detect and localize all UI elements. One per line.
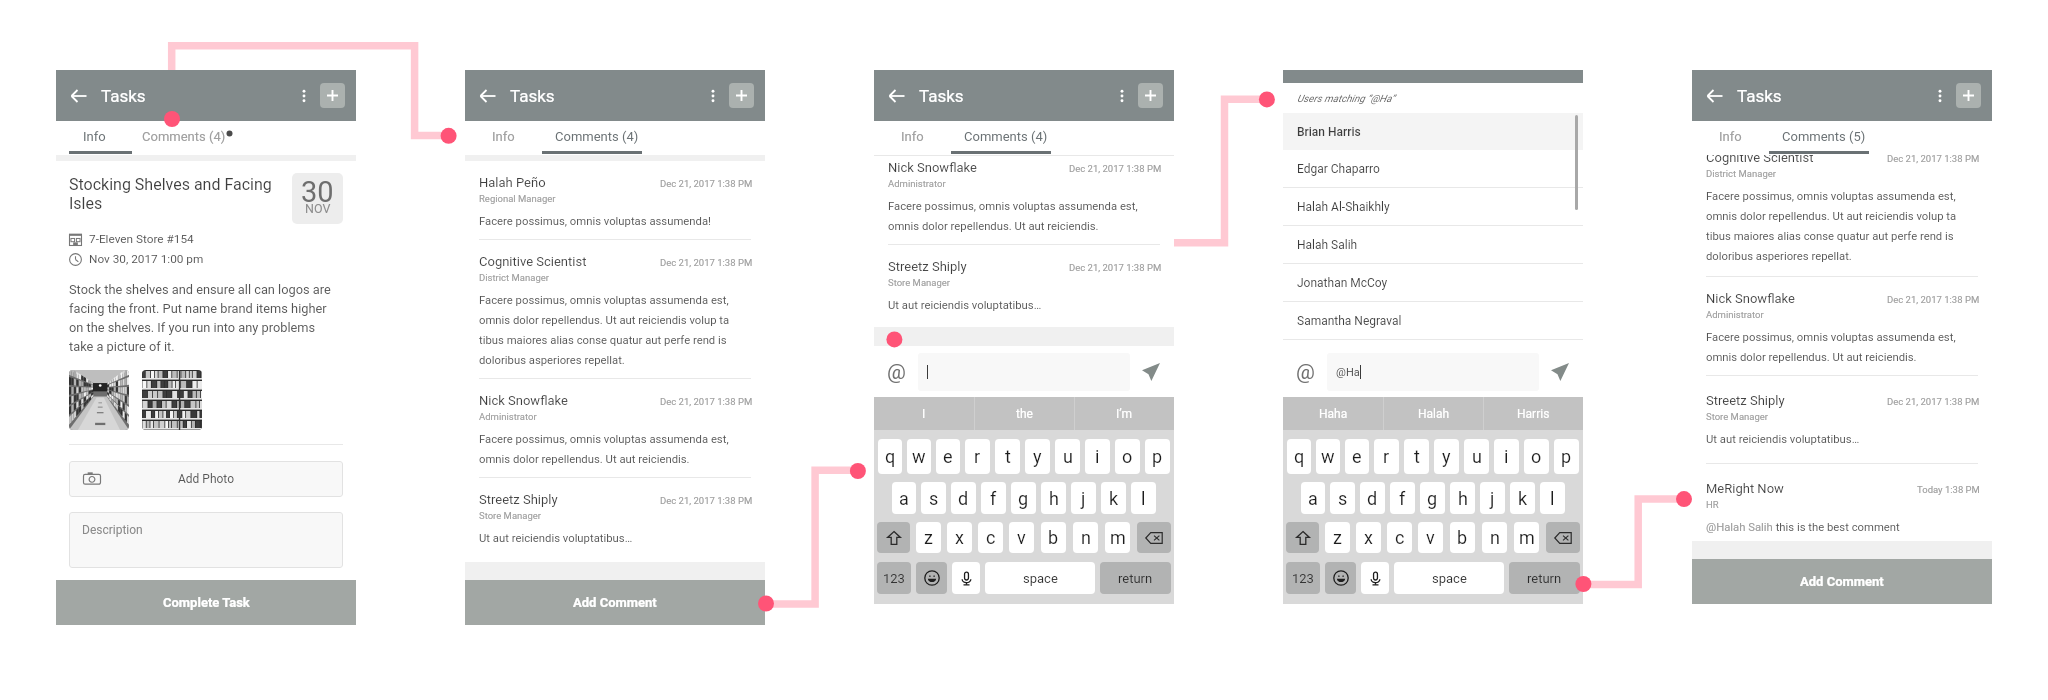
button[interactable]: Info	[465, 121, 542, 152]
button[interactable]: Comments (4)	[542, 121, 652, 152]
button[interactable]: Add Photo	[69, 461, 343, 497]
button[interactable]: i	[1494, 439, 1519, 474]
button[interactable]: a	[1301, 482, 1325, 514]
button[interactable]: Brian Harris	[1283, 113, 1583, 150]
button[interactable]: f	[981, 482, 1006, 514]
button[interactable]: u	[1464, 439, 1489, 474]
button[interactable]: d	[951, 482, 976, 514]
button[interactable]: @Ha	[1327, 353, 1539, 391]
button[interactable]: Back	[477, 85, 499, 107]
button[interactable]: l	[1131, 482, 1156, 514]
button[interactable]: w	[907, 439, 931, 474]
button[interactable]: p	[1145, 439, 1170, 474]
button[interactable]: o	[1524, 439, 1549, 474]
button[interactable]: Add Comment	[1692, 559, 1992, 604]
button[interactable]: Add task	[729, 83, 754, 108]
button[interactable]: b	[1450, 522, 1475, 553]
button[interactable]: d	[1360, 482, 1385, 514]
button[interactable]: m	[1105, 522, 1130, 553]
button[interactable]: g	[1011, 482, 1036, 514]
button[interactable]: m	[1514, 522, 1539, 553]
button[interactable]: Voice input	[1361, 562, 1389, 594]
button[interactable]: w	[1316, 439, 1340, 474]
button[interactable]: Emoji	[1325, 562, 1356, 594]
button[interactable]: v	[1009, 522, 1034, 553]
button[interactable]: Jonathan McCoy	[1283, 264, 1583, 301]
button[interactable]: q	[1287, 439, 1311, 474]
button[interactable]: Backspace	[1546, 522, 1580, 553]
button[interactable]: space	[985, 562, 1095, 594]
button[interactable]: h	[1450, 482, 1475, 514]
button[interactable]: Backspace	[1137, 522, 1171, 553]
button[interactable]: I’m	[1075, 397, 1174, 430]
button[interactable]: the	[975, 397, 1074, 430]
button[interactable]: x	[1356, 522, 1381, 553]
button[interactable]: Mention user	[883, 359, 909, 385]
button[interactable]: r	[1374, 439, 1399, 474]
button[interactable]: Halah Al-Shaikhly	[1283, 188, 1583, 225]
button[interactable]: Description	[69, 512, 343, 568]
button[interactable]: g	[1420, 482, 1445, 514]
button[interactable]: a	[892, 482, 916, 514]
button[interactable]: c	[1387, 522, 1412, 553]
button[interactable]: Back	[68, 85, 90, 107]
button[interactable]: z	[916, 522, 941, 553]
button[interactable]: t	[995, 439, 1020, 474]
button[interactable]: Harris	[1484, 397, 1583, 430]
button[interactable]: k	[1101, 482, 1126, 514]
button[interactable]: More options	[704, 87, 722, 105]
button[interactable]: Add Comment	[465, 580, 765, 625]
button[interactable]: i	[1085, 439, 1110, 474]
button[interactable]: Info	[1692, 121, 1769, 152]
button[interactable]: x	[947, 522, 972, 553]
button[interactable]: Samantha Negraval	[1283, 302, 1583, 339]
button[interactable]: Comments (5)	[1769, 121, 1879, 152]
button[interactable]: return	[1100, 562, 1171, 594]
button[interactable]: k	[1510, 482, 1535, 514]
button[interactable]: s	[921, 482, 946, 514]
button[interactable]: Halah Salih	[1283, 226, 1583, 263]
button[interactable]: Back	[1704, 85, 1726, 107]
button[interactable]: c	[978, 522, 1003, 553]
button[interactable]: Add task	[1138, 83, 1163, 108]
button[interactable]: Haha	[1283, 397, 1383, 430]
button[interactable]: f	[1390, 482, 1415, 514]
button[interactable]: Add task	[1956, 83, 1981, 108]
button[interactable]: Numbers	[877, 562, 911, 594]
button[interactable]: q	[878, 439, 902, 474]
button[interactable]: e	[1345, 439, 1369, 474]
button[interactable]: Comments (4)	[951, 121, 1061, 152]
button[interactable]: p	[1554, 439, 1579, 474]
button[interactable]: space	[1394, 562, 1504, 594]
button[interactable]: n	[1482, 522, 1507, 553]
button[interactable]: o	[1115, 439, 1140, 474]
button[interactable]: Edgar Chaparro	[1283, 150, 1583, 187]
button[interactable]: Comments (4)	[133, 121, 243, 152]
button[interactable]: Shift	[877, 522, 910, 553]
button[interactable]: l	[1540, 482, 1565, 514]
button[interactable]	[918, 353, 1130, 391]
button[interactable]: r	[965, 439, 990, 474]
button[interactable]: u	[1055, 439, 1080, 474]
button[interactable]: Emoji	[916, 562, 947, 594]
button[interactable]: j	[1071, 482, 1096, 514]
button[interactable]: Halah	[1384, 397, 1483, 430]
button[interactable]: More options	[1931, 87, 1949, 105]
button[interactable]: More options	[1113, 87, 1131, 105]
button[interactable]: Send comment	[1138, 359, 1164, 385]
button[interactable]: e	[936, 439, 960, 474]
button[interactable]: Info	[56, 121, 133, 152]
button[interactable]: Numbers	[1286, 562, 1320, 594]
button[interactable]: More options	[295, 87, 313, 105]
button[interactable]: Shift	[1286, 522, 1319, 553]
button[interactable]: Mention user	[1292, 359, 1318, 385]
button[interactable]: z	[1325, 522, 1350, 553]
button[interactable]: j	[1480, 482, 1505, 514]
button[interactable]: Voice input	[952, 562, 980, 594]
button[interactable]: s	[1330, 482, 1355, 514]
button[interactable]: Complete Task	[56, 580, 356, 625]
button[interactable]: return	[1509, 562, 1580, 594]
button[interactable]: y	[1434, 439, 1459, 474]
button[interactable]: I	[874, 397, 974, 430]
button[interactable]: Back	[886, 85, 908, 107]
